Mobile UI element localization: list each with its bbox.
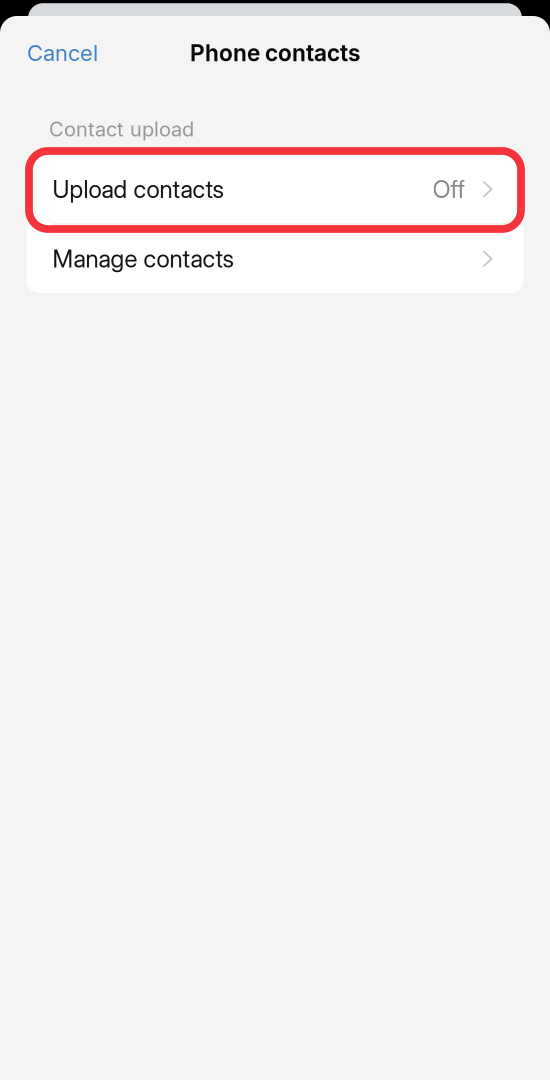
staticText: Manage contacts [52,244,233,273]
button[interactable]: Manage contacts [26,224,523,293]
button[interactable]: Upload contacts [26,155,523,223]
staticText: Contact upload [49,117,194,141]
staticText: Off [432,175,464,204]
button[interactable]: Cancel [0,26,125,80]
staticText: Cancel [27,40,98,66]
staticText: Upload contacts [52,175,223,204]
staticText: Phone contacts [190,39,360,67]
